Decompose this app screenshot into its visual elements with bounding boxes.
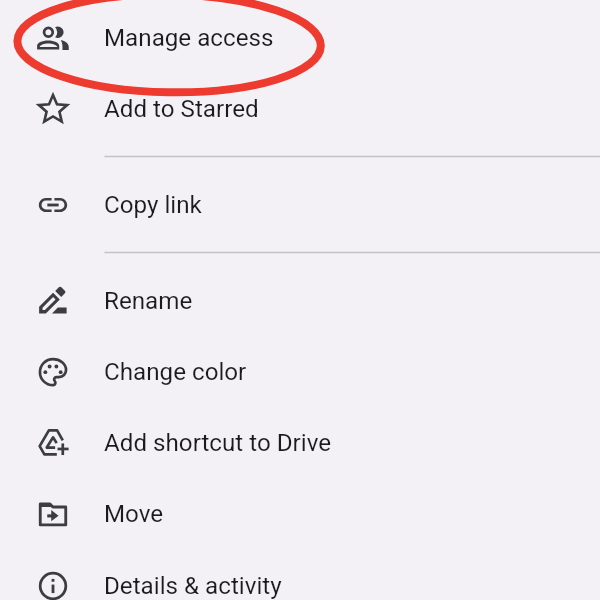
staticText: Change color	[104, 358, 247, 386]
other: Add to Starred	[36, 92, 70, 126]
other: Rename	[36, 284, 70, 318]
other: Add shortcut to Drive	[36, 426, 70, 460]
staticText: Manage access	[104, 24, 274, 52]
other: Copy link	[36, 188, 70, 222]
staticText: Add shortcut to Drive	[104, 429, 332, 457]
button[interactable]: Rename	[0, 265, 600, 336]
button[interactable]: Copy link	[0, 169, 600, 240]
button[interactable]: Change color	[0, 336, 600, 407]
button[interactable]: Details and activity	[0, 550, 600, 600]
other: Details and activity	[36, 569, 70, 600]
staticText: Rename	[104, 287, 193, 315]
staticText: Copy link	[104, 191, 202, 219]
staticText: Details & activity	[104, 572, 282, 600]
staticText: Add to Starred	[104, 95, 259, 123]
other: Manage access	[36, 21, 70, 55]
button[interactable]: Add to Starred	[0, 73, 600, 144]
button[interactable]: Add shortcut to Drive	[0, 407, 600, 478]
button[interactable]: Move	[0, 478, 600, 549]
staticText: Move	[104, 500, 164, 528]
button[interactable]: Manage access	[0, 2, 600, 73]
other: Move	[36, 497, 70, 531]
other: Change color	[36, 355, 70, 389]
